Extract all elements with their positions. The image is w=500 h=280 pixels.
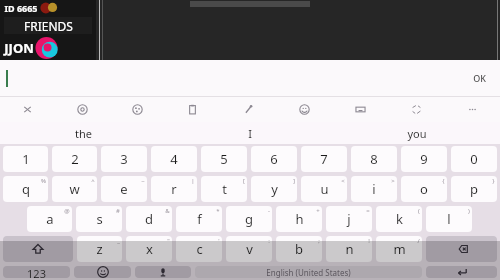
staticText: " xyxy=(167,237,170,245)
button[interactable]: Keyboard mode xyxy=(332,97,388,122)
staticText: 1 xyxy=(22,150,30,168)
button[interactable]: 3 xyxy=(101,146,147,172)
button[interactable]: you xyxy=(333,122,500,144)
staticText: < xyxy=(341,177,345,185)
button[interactable]: e xyxy=(101,176,147,202)
staticText: } xyxy=(492,177,495,185)
button[interactable]: a xyxy=(27,206,72,232)
button[interactable]: Shift xyxy=(3,236,73,262)
staticText: ID 6665 xyxy=(4,2,38,14)
button[interactable]: m xyxy=(376,236,422,262)
button[interactable]: Close xyxy=(0,97,55,122)
staticText: 0 xyxy=(470,150,478,168)
staticText: I xyxy=(248,126,252,141)
button[interactable]: x xyxy=(126,236,172,262)
button[interactable]: English (United States) xyxy=(195,266,422,278)
button[interactable]: Emoji xyxy=(74,266,131,278)
button[interactable]: c xyxy=(176,236,222,262)
staticText: s xyxy=(96,210,103,228)
staticText: ~ xyxy=(141,177,145,185)
button[interactable]: k xyxy=(376,206,422,232)
staticText: * xyxy=(216,207,220,215)
staticText: - xyxy=(268,207,270,215)
button[interactable]: h xyxy=(276,206,322,232)
button[interactable]: 5 xyxy=(201,146,247,172)
button[interactable]: r xyxy=(151,176,197,202)
button[interactable]: 6 xyxy=(251,146,297,172)
button[interactable]: g xyxy=(226,206,272,232)
button[interactable]: t xyxy=(201,176,247,202)
button[interactable]: w xyxy=(52,176,97,202)
staticText: ' xyxy=(218,237,220,245)
button[interactable]: v xyxy=(226,236,272,262)
button[interactable]: 2 xyxy=(52,146,97,172)
staticText: @ xyxy=(64,207,70,215)
button[interactable]: 0 xyxy=(451,146,497,172)
staticText: JJON xyxy=(4,39,34,57)
staticText: j xyxy=(347,210,351,228)
staticText: you xyxy=(407,126,427,141)
button[interactable]: 123 xyxy=(3,266,70,278)
button[interactable]: u xyxy=(301,176,347,202)
button[interactable]: Translate xyxy=(388,97,444,122)
staticText: : xyxy=(268,237,270,245)
button[interactable]: d xyxy=(126,206,172,232)
button[interactable]: y xyxy=(251,176,297,202)
staticText: d xyxy=(145,210,153,228)
button[interactable]: f xyxy=(176,206,222,232)
button[interactable]: Clipboard xyxy=(165,97,220,122)
staticText: 7 xyxy=(320,150,328,168)
staticText: & xyxy=(165,207,170,215)
button[interactable]: 4 xyxy=(151,146,197,172)
staticText: w xyxy=(69,180,80,198)
staticText: # xyxy=(116,207,120,215)
button[interactable]: Enter xyxy=(426,266,497,278)
staticText: m xyxy=(393,240,406,258)
staticText: / xyxy=(417,237,420,245)
button[interactable]: n xyxy=(326,236,372,262)
button[interactable]: Backspace xyxy=(426,236,497,262)
button[interactable]: j xyxy=(326,206,372,232)
button[interactable]: OK xyxy=(465,68,494,88)
button[interactable]: Stickers xyxy=(110,97,165,122)
button[interactable]: z xyxy=(77,236,122,262)
staticText: z xyxy=(96,240,103,258)
staticText: ; xyxy=(318,237,320,245)
button[interactable]: I xyxy=(166,122,333,144)
button[interactable]: l xyxy=(426,206,472,232)
button[interactable]: Settings xyxy=(55,97,110,122)
button[interactable]: i xyxy=(351,176,397,202)
button[interactable]: q xyxy=(3,176,48,202)
button[interactable]: 9 xyxy=(401,146,447,172)
staticText: [ xyxy=(243,177,245,185)
button[interactable]: Voice input xyxy=(135,266,191,278)
staticText: n xyxy=(345,240,354,258)
button[interactable]: FRIENDS xyxy=(4,17,92,34)
staticText: i xyxy=(372,180,376,198)
staticText: k xyxy=(396,210,403,228)
button[interactable]: Voice input xyxy=(220,97,276,122)
staticText: ^ xyxy=(91,177,95,185)
staticText: l xyxy=(447,210,451,228)
button[interactable]: the xyxy=(0,122,166,144)
button[interactable]: 7 xyxy=(301,146,347,172)
button[interactable]: o xyxy=(401,176,447,202)
button[interactable]: b xyxy=(276,236,322,262)
staticText: o xyxy=(420,180,428,198)
staticText: 9 xyxy=(420,150,428,168)
staticText: English (United States) xyxy=(266,267,351,278)
staticText: > xyxy=(391,177,395,185)
staticText: h xyxy=(295,210,304,228)
button[interactable]: 8 xyxy=(351,146,397,172)
button[interactable]: p xyxy=(451,176,497,202)
button[interactable]: More options xyxy=(444,97,500,122)
staticText: a xyxy=(46,210,54,228)
staticText: v xyxy=(246,240,253,258)
staticText: 5 xyxy=(220,150,228,168)
staticText: b xyxy=(295,240,303,258)
button[interactable]: 1 xyxy=(3,146,48,172)
button[interactable]: s xyxy=(76,206,122,232)
button[interactable]: Emoji xyxy=(276,97,332,122)
staticText: ) xyxy=(468,207,470,215)
staticText: y xyxy=(271,180,278,198)
